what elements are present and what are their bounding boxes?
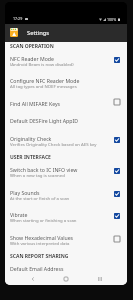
button[interactable]: Show Hexadecimal Values: [5, 230, 127, 253]
button[interactable]: [112, 57, 122, 67]
staticText: USER INTERFACE: [10, 154, 51, 161]
button[interactable]: [112, 99, 122, 109]
button[interactable]: [112, 137, 122, 147]
staticText: At the start or finish of a scan: [10, 195, 70, 201]
button[interactable]: Configure NFC Reader Mode: [5, 73, 127, 96]
staticText: Default Email Address: [10, 265, 64, 272]
staticText: All tag types and NDEF messages: [10, 83, 77, 89]
staticText: With various interpreted data: [10, 240, 70, 246]
button[interactable]: [112, 168, 122, 178]
staticText: Configure NFC Reader Mode: [10, 77, 80, 84]
staticText: Switch back to IC INFO view: [10, 166, 78, 173]
button[interactable]: [112, 213, 122, 223]
staticText: Verifies Originality Check based on AES …: [10, 141, 97, 147]
staticText: 100%: [107, 17, 117, 22]
button[interactable]: Originality Check: [5, 131, 127, 154]
button[interactable]: Play Sounds: [5, 185, 127, 208]
button[interactable]: [112, 191, 122, 201]
staticText: When a new tag is scanned: [10, 172, 65, 178]
staticText: SCAN REPORT SHARING: [10, 253, 69, 260]
staticText: Vibrate: [10, 211, 28, 218]
staticText: NFC Reader Mode: [10, 55, 54, 62]
staticText: (Android Beam is now disabled): [10, 61, 74, 67]
button[interactable]: Default Email Address: [5, 261, 127, 279]
button[interactable]: Vibrate: [5, 207, 127, 230]
staticText: SCAN OPERATION: [10, 43, 54, 50]
staticText: When starting or finishing a scan: [10, 217, 77, 223]
button[interactable]: Home: [60, 273, 72, 285]
staticText: Default DESFire Light AppID: [10, 117, 78, 124]
staticText: Play Sounds: [10, 189, 40, 196]
button[interactable]: Default DESFire Light AppID: [5, 113, 127, 131]
staticText: Settings: [27, 29, 50, 37]
button[interactable]: Recent apps: [94, 273, 106, 285]
staticText: Originality Check: [10, 135, 52, 142]
staticText: Show Hexadecimal Values: [10, 234, 74, 241]
button[interactable]: [112, 236, 122, 246]
staticText: Find All MIFARE Keys: [10, 100, 61, 107]
button[interactable]: Find All MIFARE Keys: [5, 96, 127, 114]
staticText: 17:29: [13, 16, 23, 21]
button[interactable]: Back: [27, 273, 39, 285]
button[interactable]: Switch back to IC INFO view: [5, 162, 127, 185]
button[interactable]: NFC Reader Mode: [5, 51, 127, 74]
